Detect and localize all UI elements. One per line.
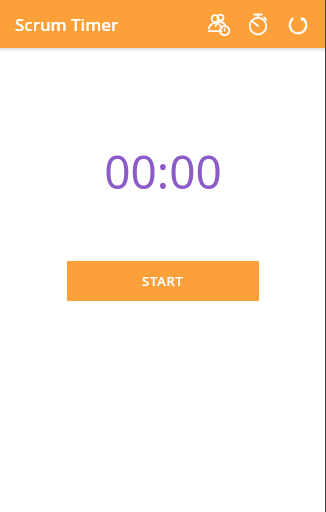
staticText: 00:00 xyxy=(104,140,222,203)
staticText: Scrum Timer xyxy=(15,13,119,36)
button[interactable]: Reset xyxy=(278,4,318,44)
button[interactable]: Set timer xyxy=(238,4,278,44)
button[interactable]: Participants xyxy=(198,4,238,44)
staticText: START xyxy=(142,272,184,290)
button[interactable]: START xyxy=(67,261,259,301)
